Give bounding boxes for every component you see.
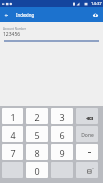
button[interactable]: 7 (2, 144, 23, 160)
button[interactable]: 0 (26, 162, 48, 178)
staticText: 14:37 (91, 1, 102, 7)
button[interactable]: Back (0, 7, 12, 22)
staticText: 4 (10, 129, 16, 141)
staticText: 7 (10, 147, 16, 159)
button[interactable]: 1 (2, 108, 23, 124)
button[interactable]: 8 (26, 144, 48, 160)
button[interactable] (76, 144, 98, 160)
button[interactable]: 2 (26, 108, 48, 124)
button[interactable]: 6 (51, 126, 73, 142)
button[interactable]: 3 (51, 108, 73, 124)
staticText: Account Number (3, 27, 27, 31)
staticText: 6 (59, 129, 65, 141)
button[interactable]: Upload to cloud (89, 7, 101, 22)
button[interactable]: 5 (26, 126, 48, 142)
staticText: 3 (59, 111, 65, 123)
button[interactable]: 9 (51, 144, 73, 160)
staticText: 2 (34, 111, 40, 123)
staticText: Done (81, 132, 94, 139)
staticText: 8 (34, 147, 40, 159)
staticText: 0 (34, 165, 40, 177)
button[interactable]: Account Number (3, 27, 103, 31)
staticText: 1 (10, 111, 16, 123)
button[interactable]: 4 (2, 126, 23, 142)
staticText: 9 (59, 147, 65, 159)
button[interactable]: Backspace (76, 108, 98, 124)
staticText: Indexing (16, 12, 35, 18)
staticText: 123456 (3, 31, 21, 38)
button[interactable]: Done (76, 126, 98, 142)
staticText: 5 (34, 129, 40, 141)
button[interactable]: Switch keyboard (76, 162, 98, 178)
